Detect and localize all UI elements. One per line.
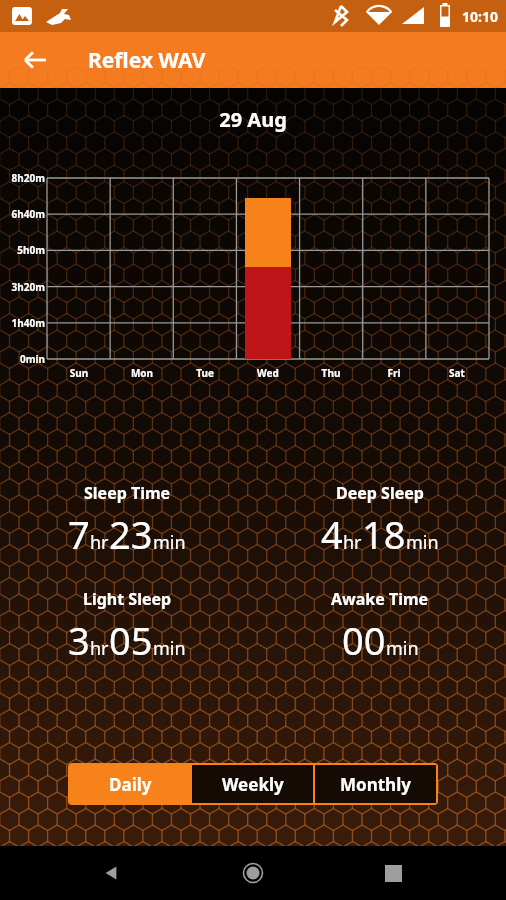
- button[interactable]: Recent apps: [369, 849, 417, 897]
- staticText: Light Sleep: [83, 588, 172, 610]
- staticText: 3h20m: [2, 280, 45, 294]
- staticText: 00: [342, 614, 386, 666]
- staticText: Awake Time: [331, 588, 429, 610]
- staticText: Thu: [301, 366, 361, 380]
- button[interactable]: Back: [88, 849, 136, 897]
- staticText: hr: [90, 636, 109, 661]
- button[interactable]: Monthly: [315, 765, 436, 803]
- staticText: 4: [321, 508, 343, 560]
- staticText: 10:10: [462, 7, 498, 26]
- staticText: Weekly: [222, 773, 284, 796]
- staticText: Sun: [49, 366, 109, 380]
- staticText: 23: [109, 508, 153, 560]
- button[interactable]: Back: [11, 36, 59, 84]
- staticText: Sleep Time: [84, 482, 171, 504]
- button[interactable]: Daily: [70, 765, 190, 803]
- staticText: 05: [109, 614, 153, 666]
- staticText: 8h20m: [2, 171, 45, 185]
- button[interactable]: Weekly: [192, 765, 313, 803]
- staticText: Monthly: [340, 773, 411, 796]
- staticText: 7: [68, 508, 90, 560]
- staticText: Reflex WAV: [88, 46, 206, 75]
- staticText: 3: [68, 614, 90, 666]
- staticText: min: [153, 530, 186, 555]
- staticText: min: [153, 636, 186, 661]
- staticText: Wed: [238, 366, 298, 380]
- staticText: hr: [343, 530, 362, 555]
- staticText: min: [386, 636, 419, 661]
- staticText: Daily: [109, 773, 152, 796]
- staticText: Fri: [364, 366, 424, 380]
- staticText: hr: [90, 530, 109, 555]
- staticText: Deep Sleep: [336, 482, 424, 504]
- staticText: Tue: [175, 366, 235, 380]
- staticText: 5h0m: [2, 243, 45, 257]
- staticText: 1h40m: [2, 316, 45, 330]
- staticText: 29 Aug: [0, 106, 506, 133]
- staticText: 18: [362, 508, 406, 560]
- staticText: 6h40m: [2, 207, 45, 221]
- staticText: Mon: [112, 366, 172, 380]
- staticText: Sat: [427, 366, 487, 380]
- button[interactable]: Home: [229, 849, 277, 897]
- staticText: 0min: [2, 352, 45, 366]
- staticText: min: [406, 530, 439, 555]
